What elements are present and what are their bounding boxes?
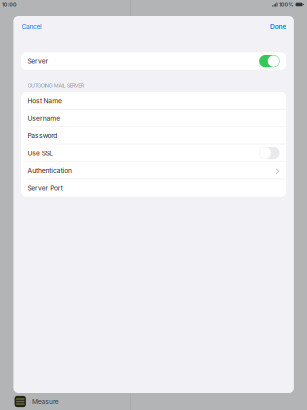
button[interactable]: Cancel [21,19,43,34]
button[interactable]: Server [21,52,286,70]
staticText: Cancel [22,22,42,31]
staticText: Measure [32,397,59,406]
staticText: Authentication [27,166,72,175]
staticText: Server Port [27,184,63,192]
button[interactable]: Host Name [21,92,286,109]
staticText: 10:00 [2,1,17,8]
button[interactable]: Authentication [21,162,286,179]
staticText: Done [270,22,286,31]
staticText: Password [27,132,57,140]
staticText: Username [27,114,60,122]
staticText: OUTGOING MAIL SERVER [27,82,84,89]
button[interactable]: Measure [15,396,59,407]
button[interactable]: Server Port [21,179,286,197]
staticText: Server [27,57,48,65]
staticText: 100% [279,1,293,8]
staticText: Host Name [27,97,62,105]
button[interactable]: Password [21,127,286,144]
button[interactable]: Username [21,109,286,127]
button[interactable]: Use SSL [21,144,286,162]
button[interactable]: Done [269,19,287,34]
staticText: Use SSL [27,149,53,157]
